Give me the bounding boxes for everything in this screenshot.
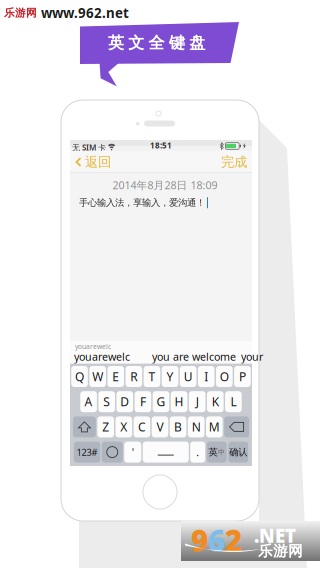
staticText: T (148, 368, 155, 384)
staticText: B (174, 419, 182, 435)
staticText: youarewelc (75, 342, 111, 351)
button[interactable]: G (153, 391, 169, 412)
staticText: L (230, 394, 236, 410)
staticText: youarewelc (74, 349, 130, 364)
button[interactable]: Shift (73, 416, 96, 437)
button[interactable]: V (152, 416, 168, 437)
button[interactable]: 完成 (218, 151, 250, 173)
staticText: C (138, 419, 146, 435)
staticText: 2014年8月28日 18:09 (112, 178, 217, 192)
staticText: Z (102, 419, 109, 435)
staticText: H (175, 394, 184, 410)
staticText: G (156, 394, 165, 410)
button[interactable]: Q (71, 366, 88, 387)
button[interactable]: J (189, 391, 205, 412)
staticText: F (140, 394, 146, 410)
staticText: M (209, 419, 220, 435)
staticText: U (184, 368, 193, 384)
button[interactable]: you are welcome (152, 350, 236, 363)
staticText: 乐游网 (258, 542, 303, 560)
staticText: Q (75, 368, 84, 384)
staticText: 9 (191, 521, 208, 560)
staticText: O (220, 368, 229, 384)
button[interactable]: your (241, 350, 269, 363)
button[interactable]: H (171, 391, 187, 412)
staticText: R (130, 368, 137, 384)
button[interactable]: T (144, 366, 160, 387)
staticText: 英文全键盘 (108, 33, 205, 53)
staticText: X (120, 419, 127, 435)
button[interactable]: Switch keyboard (102, 442, 123, 463)
button[interactable]: P (234, 366, 251, 387)
button[interactable]: K (207, 391, 224, 412)
staticText: J (196, 394, 199, 410)
button[interactable]: W (89, 366, 106, 387)
button[interactable]: Z (97, 416, 114, 437)
button[interactable]: 123# (74, 442, 100, 463)
button[interactable]: D (116, 391, 133, 412)
button[interactable]: Delete (224, 416, 249, 437)
staticText: D (120, 394, 129, 410)
staticText: W (92, 368, 103, 384)
staticText: N (192, 419, 201, 435)
staticText: K (212, 394, 219, 410)
button[interactable]: ' (124, 442, 141, 463)
button[interactable]: U (180, 366, 196, 387)
staticText: . (196, 445, 199, 459)
staticText: 乐游网 (4, 6, 37, 19)
staticText: 手心输入法，享输入，爱沟通！ (79, 197, 205, 208)
button[interactable]: Y (162, 366, 178, 387)
button[interactable]: F (135, 391, 151, 412)
button[interactable]: O (216, 366, 233, 387)
staticText: I (204, 368, 208, 384)
staticText: P (239, 368, 246, 384)
button[interactable]: youarewelc (74, 350, 140, 363)
staticText: Y (167, 368, 174, 384)
button[interactable]: M (206, 416, 223, 437)
button[interactable]: I (198, 366, 214, 387)
button[interactable]: 英 (207, 442, 227, 463)
staticText: V (156, 419, 163, 435)
button[interactable]: 确认 (228, 442, 248, 463)
staticText: 6 (208, 521, 225, 560)
button[interactable]: B (170, 416, 186, 437)
staticText: S (103, 394, 110, 410)
staticText: A (85, 394, 93, 410)
button[interactable]: C (134, 416, 150, 437)
button[interactable]: 返回 (72, 151, 114, 173)
button[interactable]: S (98, 391, 115, 412)
button[interactable]: E (107, 366, 124, 387)
button[interactable]: R (126, 366, 142, 387)
staticText: 无 SIM 卡 (72, 142, 106, 153)
staticText: 2 (225, 521, 242, 560)
staticText: you are welcome (152, 349, 236, 364)
button[interactable]: . (190, 442, 205, 463)
staticText: 完成 (221, 154, 247, 170)
button[interactable]: N (188, 416, 204, 437)
button[interactable]: X (115, 416, 132, 437)
staticText: ' (132, 445, 134, 459)
staticText: your (241, 349, 263, 364)
staticText: 123# (76, 446, 97, 458)
staticText: E (112, 368, 119, 384)
button[interactable]: Space (143, 442, 189, 463)
staticText: 返回 (85, 154, 111, 170)
staticText: 中 (218, 448, 225, 456)
button[interactable]: L (225, 391, 242, 412)
staticText: .NET (254, 523, 296, 548)
staticText: www.962.net (41, 4, 129, 22)
staticText: 18:51 (150, 140, 172, 151)
staticText: 确认 (229, 446, 247, 458)
button[interactable]: A (80, 391, 97, 412)
staticText: 英 (208, 446, 217, 458)
